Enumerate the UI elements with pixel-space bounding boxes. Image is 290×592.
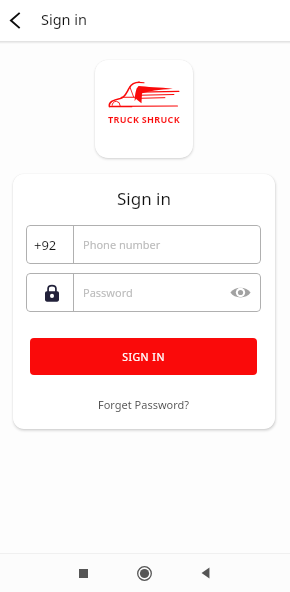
button[interactable]: Recent apps	[65, 555, 101, 591]
button[interactable]: Show password	[220, 273, 261, 312]
button[interactable]: SIGN IN	[30, 338, 257, 375]
staticText: Sign in	[117, 187, 171, 210]
staticText: Phone number	[83, 237, 161, 252]
button[interactable]: Back	[187, 555, 223, 591]
button[interactable]: Password	[26, 273, 261, 312]
staticText: Password	[83, 285, 133, 300]
staticText: TRUCK SHRUCK	[108, 113, 180, 125]
button[interactable]: Back	[0, 0, 31, 41]
button[interactable]: Home	[126, 555, 162, 591]
button[interactable]: +92	[26, 225, 261, 264]
button[interactable]: Forget Password?	[94, 395, 194, 414]
staticText: +92	[34, 236, 57, 254]
staticText: SIGN IN	[122, 350, 165, 364]
staticText: Sign in	[41, 9, 88, 29]
